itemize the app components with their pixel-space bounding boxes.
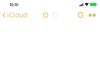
staticText: iCloud bbox=[7, 11, 27, 19]
button[interactable]: Sort bbox=[40, 10, 51, 20]
staticText: 10:10 bbox=[9, 2, 18, 7]
button[interactable]: Gallery view bbox=[86, 11, 99, 20]
button[interactable]: More bbox=[75, 10, 86, 20]
button[interactable]: iCloud bbox=[3, 8, 27, 22]
button[interactable]: Search bbox=[50, 10, 61, 20]
